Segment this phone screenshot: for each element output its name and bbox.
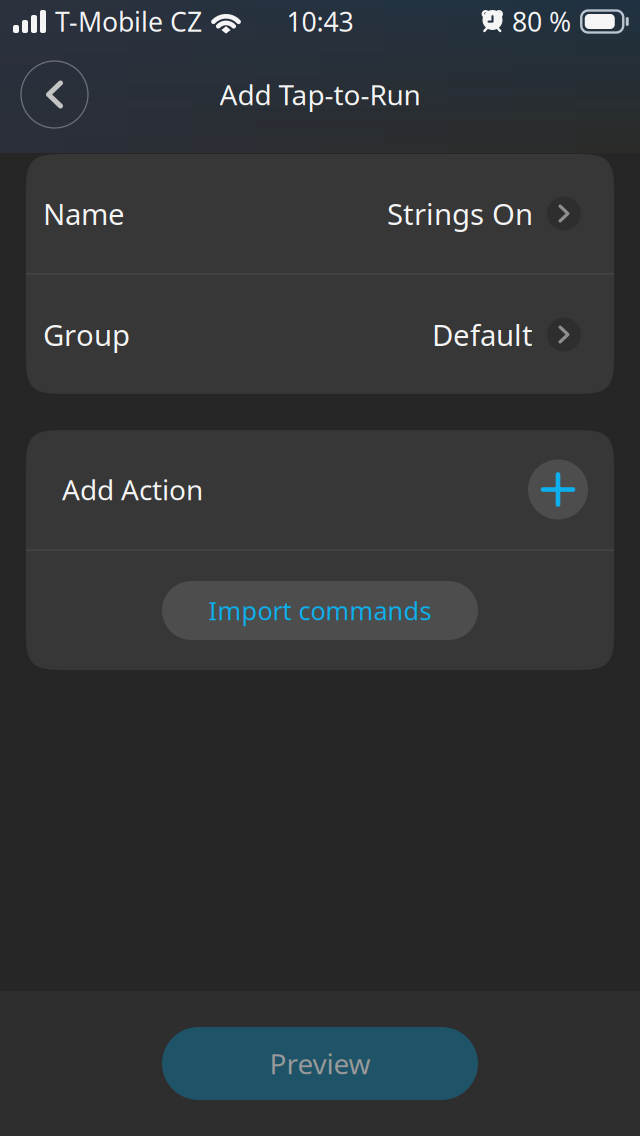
button[interactable]: Preview [162,1027,478,1100]
button[interactable]: Add Action [26,429,614,549]
button[interactable]: Group [26,274,614,394]
staticText: Preview [269,1045,370,1082]
staticText: Group [43,315,130,354]
button[interactable]: Import commands [162,581,478,640]
button[interactable]: Name [26,153,614,273]
staticText: 10:43 [286,4,353,39]
staticText: Add Tap-to-Run [219,76,420,113]
staticText: 80 % [512,4,571,39]
staticText: Name [43,194,125,233]
staticText: Add Action [62,471,203,508]
staticText: Default [432,315,533,354]
staticText: Import commands [208,594,431,627]
button[interactable]: Back [21,61,88,128]
staticText: Strings On [387,194,533,233]
staticText: T-Mobile CZ [55,4,202,39]
